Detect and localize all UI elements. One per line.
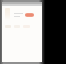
button[interactable]: Primary action — [25, 13, 34, 17]
button[interactable]: Thumbnail — [5, 8, 10, 21]
